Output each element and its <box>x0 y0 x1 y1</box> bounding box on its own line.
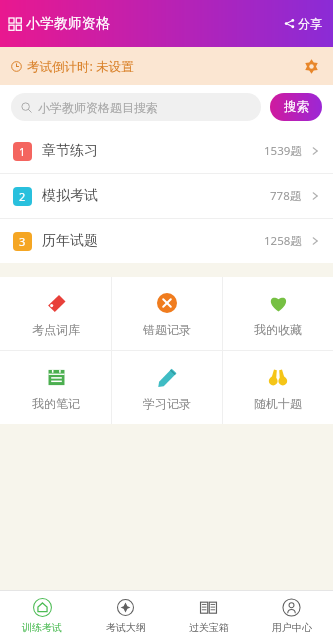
button[interactable]: 我的笔记 <box>0 351 111 424</box>
staticText: 章节练习 <box>42 142 98 160</box>
staticText: 3 <box>19 234 26 249</box>
staticText: 模拟考试 <box>42 187 98 205</box>
button[interactable]: 训练考试 <box>0 591 84 639</box>
staticText: 搜索 <box>284 99 309 115</box>
button[interactable]: 学习记录 <box>112 351 222 424</box>
button[interactable]: 错题记录 <box>112 277 222 350</box>
staticText: 1 <box>19 144 26 159</box>
staticText: 随机十题 <box>254 396 302 411</box>
button[interactable]: 随机十题 <box>223 351 333 424</box>
button[interactable]: 分享 <box>282 12 324 35</box>
button[interactable]: 我的收藏 <box>223 277 333 350</box>
staticText: 考点词库 <box>32 322 80 337</box>
button[interactable]: 搜索 <box>270 93 322 121</box>
staticText: 考试倒计时: 未设置 <box>27 58 134 75</box>
staticText: 我的笔记 <box>32 396 80 411</box>
staticText: 训练考试 <box>22 621 62 634</box>
staticText: 2 <box>19 189 26 204</box>
staticText: 小学教师资格 <box>26 15 110 33</box>
button[interactable]: 过关宝箱 <box>167 591 250 639</box>
staticText: 过关宝箱 <box>189 621 229 634</box>
staticText: 1539题 <box>264 143 302 159</box>
staticText: 历年试题 <box>42 232 98 250</box>
staticText: 小学教师资格题目搜索 <box>38 100 158 115</box>
staticText: 学习记录 <box>143 396 191 411</box>
button[interactable]: 考点词库 <box>0 277 111 350</box>
button[interactable]: 用户中心 <box>250 591 333 639</box>
button[interactable]: 3 <box>0 219 333 263</box>
staticText: 错题记录 <box>143 322 191 337</box>
staticText: 分享 <box>298 16 322 31</box>
button[interactable]: 小学教师资格题目搜索 <box>11 93 261 121</box>
staticText: 778题 <box>270 188 302 204</box>
button[interactable]: 1 <box>0 129 333 173</box>
button[interactable]: Settings <box>299 54 323 78</box>
staticText: 用户中心 <box>272 621 312 634</box>
button[interactable]: 2 <box>0 174 333 218</box>
staticText: 我的收藏 <box>254 322 302 337</box>
staticText: 1258题 <box>264 233 302 249</box>
button[interactable]: 考试大纲 <box>84 591 167 639</box>
staticText: 考试大纲 <box>106 621 146 634</box>
